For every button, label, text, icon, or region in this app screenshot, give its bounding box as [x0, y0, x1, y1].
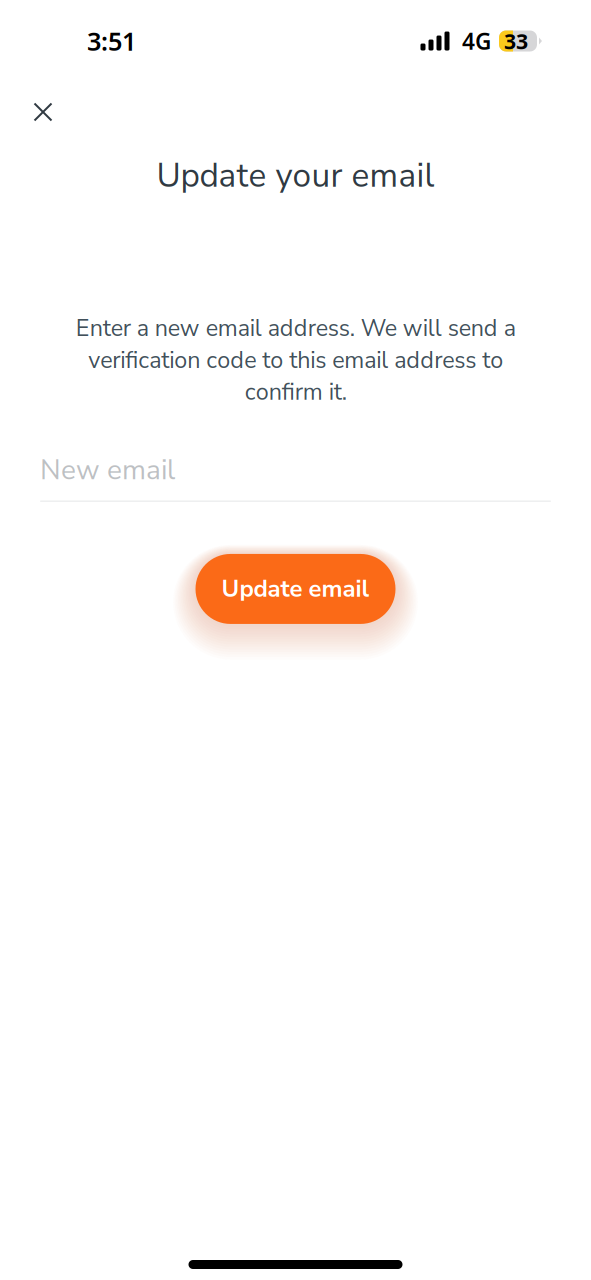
staticText: Update email: [221, 573, 369, 605]
staticText: Enter a new email address. We will send …: [75, 312, 515, 408]
button[interactable]: Close: [18, 87, 68, 137]
staticText: New email: [40, 451, 175, 489]
staticText: 3:51: [87, 24, 136, 58]
staticText: Update your email: [156, 153, 434, 198]
button[interactable]: Update email: [171, 530, 419, 648]
staticText: 33: [504, 26, 528, 56]
staticText: 4G: [462, 26, 491, 56]
